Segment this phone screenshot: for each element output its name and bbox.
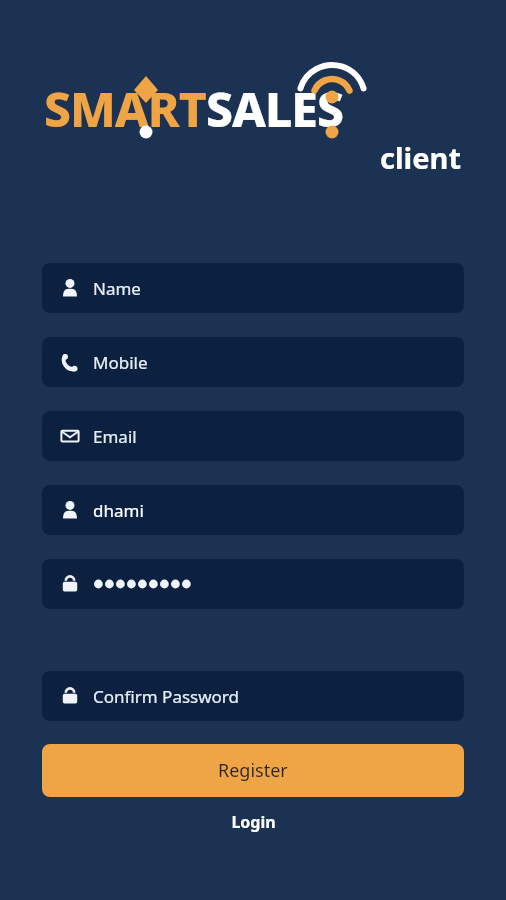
staticText: SMART xyxy=(44,76,206,141)
button[interactable]: Confirm Password xyxy=(42,671,464,721)
staticText: client xyxy=(380,138,462,177)
button[interactable]: Name xyxy=(42,263,464,313)
staticText: Name xyxy=(93,277,141,300)
staticText: Login xyxy=(231,811,276,833)
staticText: Email xyxy=(93,425,137,448)
button[interactable]: dhami xyxy=(42,485,464,535)
button[interactable]: Email xyxy=(42,411,464,461)
staticText: Register xyxy=(218,758,288,783)
button[interactable]: Password xyxy=(42,559,464,609)
button[interactable]: Register xyxy=(42,744,464,797)
staticText: Confirm Password xyxy=(93,685,239,708)
staticText: SALES xyxy=(206,76,344,141)
button[interactable]: Login xyxy=(0,806,506,838)
button[interactable]: Mobile xyxy=(42,337,464,387)
staticText: dhami xyxy=(93,499,144,522)
staticText: Mobile xyxy=(93,351,148,374)
